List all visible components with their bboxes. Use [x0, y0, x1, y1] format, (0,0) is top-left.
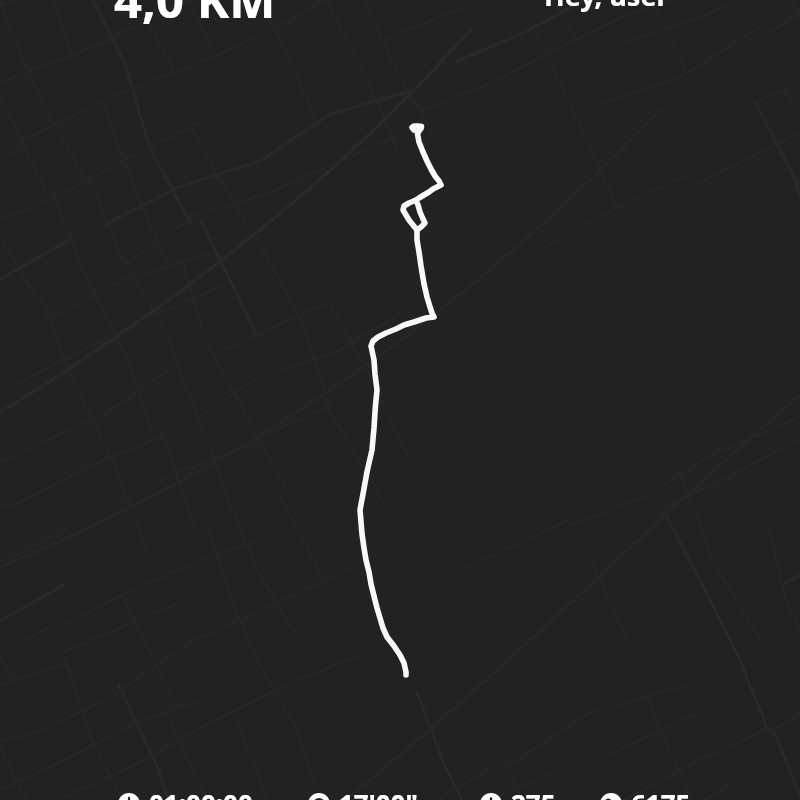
staticText: 6175 — [631, 786, 691, 800]
staticText: 01:00:00 — [149, 786, 253, 800]
staticText: 17'00" — [339, 786, 418, 800]
staticText: 275 — [511, 786, 556, 800]
staticText: 4,0 KM — [114, 0, 276, 33]
button[interactable]: Calories — [480, 786, 556, 800]
button[interactable]: Steps — [600, 786, 691, 800]
staticText: Hey, user — [544, 0, 669, 14]
button[interactable]: Pace — [308, 786, 418, 800]
button[interactable]: Duration — [118, 786, 253, 800]
